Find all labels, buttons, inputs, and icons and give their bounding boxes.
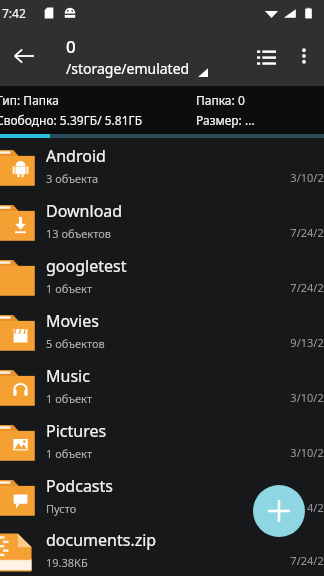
staticText: 13 объектов (46, 226, 111, 241)
staticText: Папка: 0 (196, 92, 245, 108)
staticText: Android (46, 145, 106, 167)
button[interactable]: googletest (0, 248, 324, 303)
staticText: Music (46, 365, 90, 387)
staticText: 0 (66, 35, 76, 58)
staticText: Movies (46, 310, 99, 332)
staticText: 9/13/22 (290, 335, 324, 350)
staticText: Пусто (46, 501, 77, 516)
staticText: 7/24/23 (290, 280, 324, 295)
staticText: 3 объекта (46, 171, 99, 186)
button[interactable]: Download (0, 193, 324, 248)
staticText: 7:42 (2, 5, 26, 21)
staticText: 1 объект (46, 446, 93, 461)
button[interactable]: Back (0, 32, 48, 80)
button[interactable]: documents.zip (0, 523, 324, 576)
staticText: documents.zip (46, 529, 157, 551)
staticText: googletest (46, 255, 127, 277)
staticText: Pictures (46, 420, 107, 442)
staticText: 3/10/22 (290, 390, 324, 405)
button[interactable]: Add (253, 485, 305, 537)
staticText: Размер: ... (196, 112, 255, 128)
staticText: Podcasts (46, 475, 113, 497)
staticText: /storage/emulated (66, 59, 190, 78)
staticText: 3/10/22 (290, 445, 324, 460)
staticText: 1 объект (46, 281, 93, 296)
staticText: 7/24/23 (290, 553, 324, 568)
staticText: 7/24/23 (290, 225, 324, 240)
staticText: 4/23 (307, 500, 324, 515)
staticText: 5 объектов (46, 336, 105, 351)
staticText: Свободно: 5.39ГБ/ 5.81ГБ (0, 112, 143, 128)
button[interactable]: Android (0, 138, 324, 193)
staticText: Download (46, 200, 123, 222)
button[interactable]: More options (284, 36, 324, 76)
button[interactable]: Movies (0, 303, 324, 358)
button[interactable]: Podcasts (0, 468, 324, 523)
button[interactable]: Music (0, 358, 324, 413)
staticText: 1 объект (46, 391, 93, 406)
staticText: 3/10/22 (290, 170, 324, 185)
button[interactable]: Pictures (0, 413, 324, 468)
staticText: 19.38КБ (46, 555, 88, 570)
staticText: Тип: Папка (0, 92, 59, 108)
button[interactable]: List view (244, 34, 288, 78)
